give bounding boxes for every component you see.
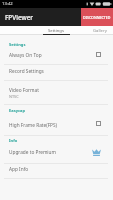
staticText: Settings: [48, 28, 64, 34]
staticText: Record Settings: [9, 68, 44, 74]
staticText: Gallery: [93, 28, 107, 34]
staticText: FPViewer: [5, 13, 33, 22]
button[interactable]: [0, 163, 113, 179]
staticText: High Frame Rate(FPS): [9, 122, 57, 128]
button[interactable]: [0, 147, 113, 163]
staticText: Video Format: [9, 87, 39, 93]
other: Premium: [92, 149, 101, 156]
button[interactable]: [0, 47, 113, 64]
staticText: DISCONNECTED: [83, 15, 111, 20]
button[interactable]: Settings: [34, 26, 78, 35]
staticText: Easycap: [9, 108, 25, 113]
staticText: Upgrade to Premium: [9, 149, 56, 155]
staticText: NTSC: [9, 94, 19, 99]
staticText: Settings: [9, 42, 26, 47]
button[interactable]: Gallery: [78, 26, 113, 35]
button[interactable]: [0, 80, 113, 105]
button[interactable]: [0, 118, 113, 135]
staticText: Info: [9, 138, 18, 143]
button[interactable]: [0, 64, 113, 80]
staticText: App Info: [9, 166, 29, 172]
button[interactable]: DISCONNECTED: [81, 8, 113, 26]
staticText: Always On Top: [9, 52, 42, 58]
staticText: 13:42: [2, 1, 13, 7]
